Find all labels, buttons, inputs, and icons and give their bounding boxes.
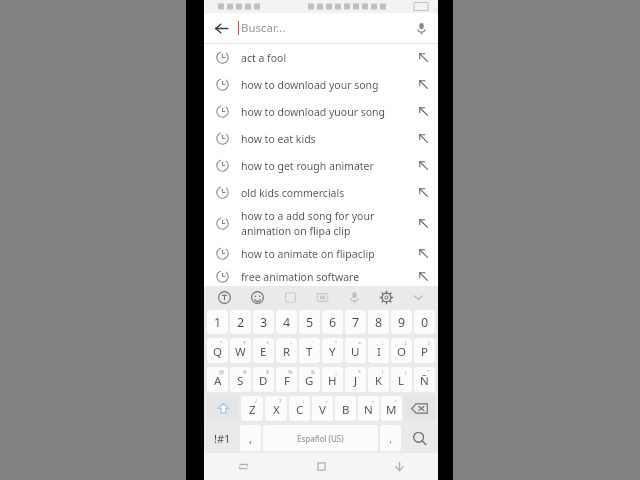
button[interactable]: Recents xyxy=(204,453,282,480)
button[interactable]: how to a add song for your xyxy=(204,206,438,240)
staticText: + xyxy=(266,339,270,346)
staticText: A xyxy=(214,373,222,389)
button[interactable]: - xyxy=(276,338,297,363)
button[interactable]: · xyxy=(335,396,356,421)
staticText: Z xyxy=(249,402,256,418)
button[interactable]: Shift xyxy=(207,396,239,421)
button[interactable]: @ xyxy=(207,367,228,392)
staticText: $ xyxy=(266,368,270,375)
button[interactable]: how to animate on flipaclip xyxy=(204,240,438,267)
button[interactable]: ^ xyxy=(381,396,402,421)
button[interactable]: Home xyxy=(282,453,360,480)
button[interactable]: 6 xyxy=(322,310,343,334)
staticText: G xyxy=(305,373,314,389)
button[interactable]: GIF xyxy=(306,286,338,308)
staticText: @ xyxy=(219,368,224,375)
staticText: N xyxy=(364,402,373,418)
button[interactable]: Stickers xyxy=(274,286,306,308)
button[interactable]: 8 xyxy=(368,310,389,334)
staticText: ° xyxy=(220,339,223,346)
button[interactable]: how to download your song xyxy=(204,71,438,98)
button[interactable]: _ xyxy=(322,367,343,392)
button[interactable]: !#1 xyxy=(207,425,238,451)
button[interactable]: how to download yuour song xyxy=(204,98,438,125)
staticText: K xyxy=(375,373,383,389)
staticText: J xyxy=(354,373,358,389)
button[interactable]: Settings xyxy=(370,286,402,308)
button[interactable]: 3 xyxy=(253,310,274,334)
button[interactable]: ¬ xyxy=(358,396,379,421)
button[interactable]: ( xyxy=(391,338,412,363)
button[interactable]: 1 xyxy=(207,310,228,334)
staticText: . xyxy=(389,431,392,446)
staticText: " xyxy=(427,368,430,375)
staticText: W xyxy=(235,344,246,360)
staticText: P xyxy=(421,344,428,360)
button[interactable]: how to eat kids xyxy=(204,125,438,152)
button[interactable]: old kids commercials xyxy=(204,179,438,206)
button[interactable]: Hide keyboard xyxy=(402,286,434,308)
button[interactable]: act a fool xyxy=(204,44,438,71)
staticText: how to animate on flipaclip xyxy=(241,247,375,261)
button[interactable]: ; xyxy=(289,396,310,421)
button[interactable]: ? xyxy=(265,396,287,421)
button[interactable]: 9 xyxy=(391,310,412,334)
staticText: R xyxy=(283,344,291,360)
button[interactable]: $ xyxy=(253,367,274,392)
button[interactable]: ) xyxy=(414,338,435,363)
button[interactable]: : xyxy=(368,338,389,363)
button[interactable]: 7 xyxy=(345,310,366,334)
staticText: ( xyxy=(405,339,407,346)
button[interactable]: free animation software xyxy=(204,267,438,286)
button[interactable]: / xyxy=(241,396,263,421)
button[interactable]: Search xyxy=(403,425,435,451)
button[interactable]: Text mode xyxy=(208,286,241,308)
staticText: # xyxy=(243,368,247,375)
button[interactable]: Español (US) xyxy=(263,425,378,451)
button[interactable]: % xyxy=(276,367,297,392)
staticText: how to eat kids xyxy=(241,132,316,146)
button[interactable]: 5 xyxy=(299,310,320,334)
staticText: 3 xyxy=(260,314,268,331)
button[interactable]: " xyxy=(414,367,435,392)
button[interactable]: , xyxy=(240,425,261,451)
button[interactable]: ¡ xyxy=(391,367,412,392)
button[interactable]: ° xyxy=(207,338,228,363)
staticText: ¡ xyxy=(405,368,407,375)
staticText: B xyxy=(342,402,350,418)
button[interactable]: Back xyxy=(360,453,438,480)
button[interactable]: ' xyxy=(299,338,320,363)
button[interactable]: Emoji xyxy=(241,286,274,308)
button[interactable]: & xyxy=(299,367,320,392)
button[interactable]: ! xyxy=(368,367,389,392)
button[interactable]: Buscar... xyxy=(238,13,404,43)
staticText: how to get rough animater xyxy=(241,159,374,173)
staticText: how to download yuour song xyxy=(241,105,386,119)
button[interactable]: 2 xyxy=(230,310,251,334)
staticText: , xyxy=(249,431,252,446)
button[interactable]: Voice search xyxy=(404,13,438,43)
button[interactable]: = xyxy=(345,338,366,363)
staticText: !#1 xyxy=(214,431,231,446)
button[interactable]: ~ xyxy=(312,396,333,421)
staticText: X xyxy=(273,402,280,418)
button[interactable]: how to get rough animater xyxy=(204,152,438,179)
button[interactable]: * xyxy=(345,367,366,392)
staticText: Español (US) xyxy=(297,433,344,444)
staticText: = xyxy=(358,339,362,346)
button[interactable]: * xyxy=(230,338,251,363)
staticText: animation on flipa clip xyxy=(241,224,351,238)
button[interactable]: 0 xyxy=(414,310,435,334)
staticText: L xyxy=(398,373,405,389)
button[interactable]: Backspace xyxy=(404,396,435,421)
button[interactable]: Voice input xyxy=(338,286,370,308)
button[interactable]: . xyxy=(380,425,401,451)
button[interactable]: # xyxy=(230,367,251,392)
staticText: * xyxy=(243,339,247,346)
button[interactable]: + xyxy=(253,338,274,363)
staticText: H xyxy=(328,373,337,389)
button[interactable]: 4 xyxy=(276,310,297,334)
button[interactable]: Back xyxy=(204,13,238,43)
staticText: 8 xyxy=(375,314,383,331)
button[interactable]: " xyxy=(322,338,343,363)
